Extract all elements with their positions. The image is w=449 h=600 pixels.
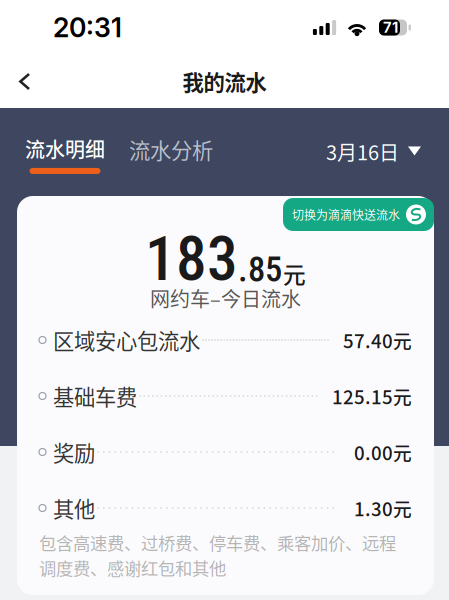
button[interactable]: 流水分析 xyxy=(112,134,222,165)
staticText: 我的流水 xyxy=(182,66,266,97)
staticText: 57.40元 xyxy=(343,326,412,353)
staticText: 包含高速费、过桥费、停车费、乘客加价、远程 调度费、感谢红包和其他 xyxy=(39,530,396,580)
staticText: 183 xyxy=(145,223,238,295)
staticText: 20:31 xyxy=(53,11,122,44)
button[interactable]: 流水明细 xyxy=(0,134,112,174)
staticText: 0.00元 xyxy=(354,438,412,465)
button[interactable]: 切换为滴滴快送流水 xyxy=(283,198,434,231)
staticText: 区域安心包流水 xyxy=(53,325,200,355)
staticText: 71 xyxy=(383,19,398,36)
staticText: 3月16日 xyxy=(326,137,399,166)
staticText: 切换为滴滴快送流水 xyxy=(292,206,400,223)
staticText: 流水明细 xyxy=(25,134,105,163)
staticText: .85 xyxy=(238,249,282,290)
staticText: 奖励 xyxy=(53,437,95,467)
button[interactable]: Back xyxy=(0,58,49,105)
staticText: 网约车–今日流水 xyxy=(150,283,301,312)
staticText: 元 xyxy=(283,257,306,290)
staticText: 125.15元 xyxy=(332,382,412,409)
staticText: 基础车费 xyxy=(53,381,137,411)
staticText: 其他 xyxy=(53,493,95,523)
button[interactable]: 3月16日 xyxy=(326,134,449,166)
staticText: 流水分析 xyxy=(129,134,213,165)
staticText: 1.30元 xyxy=(354,494,412,521)
